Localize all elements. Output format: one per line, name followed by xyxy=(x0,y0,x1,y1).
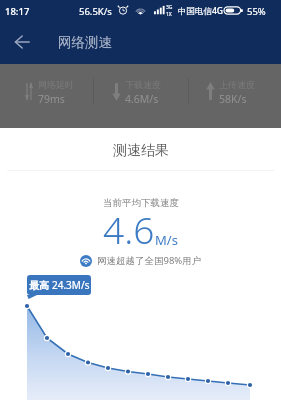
staticText: 58K/s xyxy=(219,92,247,106)
button[interactable]: 上传速度 xyxy=(184,64,276,128)
staticText: 24.3M/s xyxy=(52,278,90,292)
staticText: 网络测速 xyxy=(58,34,112,51)
staticText: M/s xyxy=(155,231,178,249)
button[interactable]: Back xyxy=(0,20,42,64)
staticText: 最高 xyxy=(29,279,49,292)
staticText: 79ms xyxy=(38,92,65,106)
staticText: 1X xyxy=(166,11,172,18)
staticText: 4.6M/s xyxy=(125,92,159,106)
staticText: 当前平均下载速度 xyxy=(103,197,179,209)
staticText: 3G xyxy=(166,4,173,11)
staticText: 中国电信4G xyxy=(178,5,224,17)
staticText: 56.5K/s xyxy=(79,5,112,18)
staticText: 55% xyxy=(247,5,266,18)
staticText: 网络延时 xyxy=(38,79,74,90)
staticText: 4.6 xyxy=(103,204,155,254)
button[interactable]: 网络延时 xyxy=(3,64,96,128)
staticText: 网速超越了全国98%用户 xyxy=(97,254,202,267)
staticText: 上传速度 xyxy=(219,79,255,90)
staticText: 18:17 xyxy=(5,5,30,18)
button[interactable]: 下载速度 xyxy=(89,64,183,128)
staticText: 测速结果 xyxy=(113,142,169,160)
staticText: 下载速度 xyxy=(125,79,161,90)
